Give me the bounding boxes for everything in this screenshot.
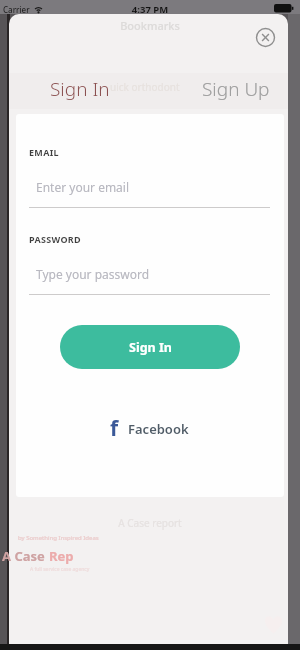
button[interactable]: Sign Up (202, 76, 270, 102)
staticText: f (110, 414, 119, 443)
staticText: by Something Inspired Ideas (18, 534, 99, 542)
button[interactable]: Type your password (29, 259, 270, 295)
staticText: Sign In (129, 339, 172, 356)
button[interactable]: f (110, 414, 189, 443)
staticText: A Case (2, 547, 49, 565)
staticText: 4:37 PM (0, 3, 300, 16)
button[interactable] (254, 26, 277, 49)
button[interactable]: Enter your email (29, 172, 270, 208)
staticText: Rep (49, 547, 74, 565)
staticText: Facebook (128, 420, 189, 438)
staticText: Enter your email (36, 179, 130, 195)
staticText: Bookmarks (0, 18, 300, 33)
staticText: A Case report (0, 516, 300, 530)
staticText: EMAIL (29, 146, 59, 158)
staticText: uick orthodont (110, 80, 180, 94)
staticText: Type your password (36, 266, 150, 282)
button[interactable]: Sign In (60, 325, 240, 369)
staticText: Carrier (3, 4, 30, 15)
staticText: A full service case agency (30, 566, 90, 573)
staticText: PASSWORD (29, 233, 81, 245)
button[interactable]: Sign In (50, 76, 110, 102)
